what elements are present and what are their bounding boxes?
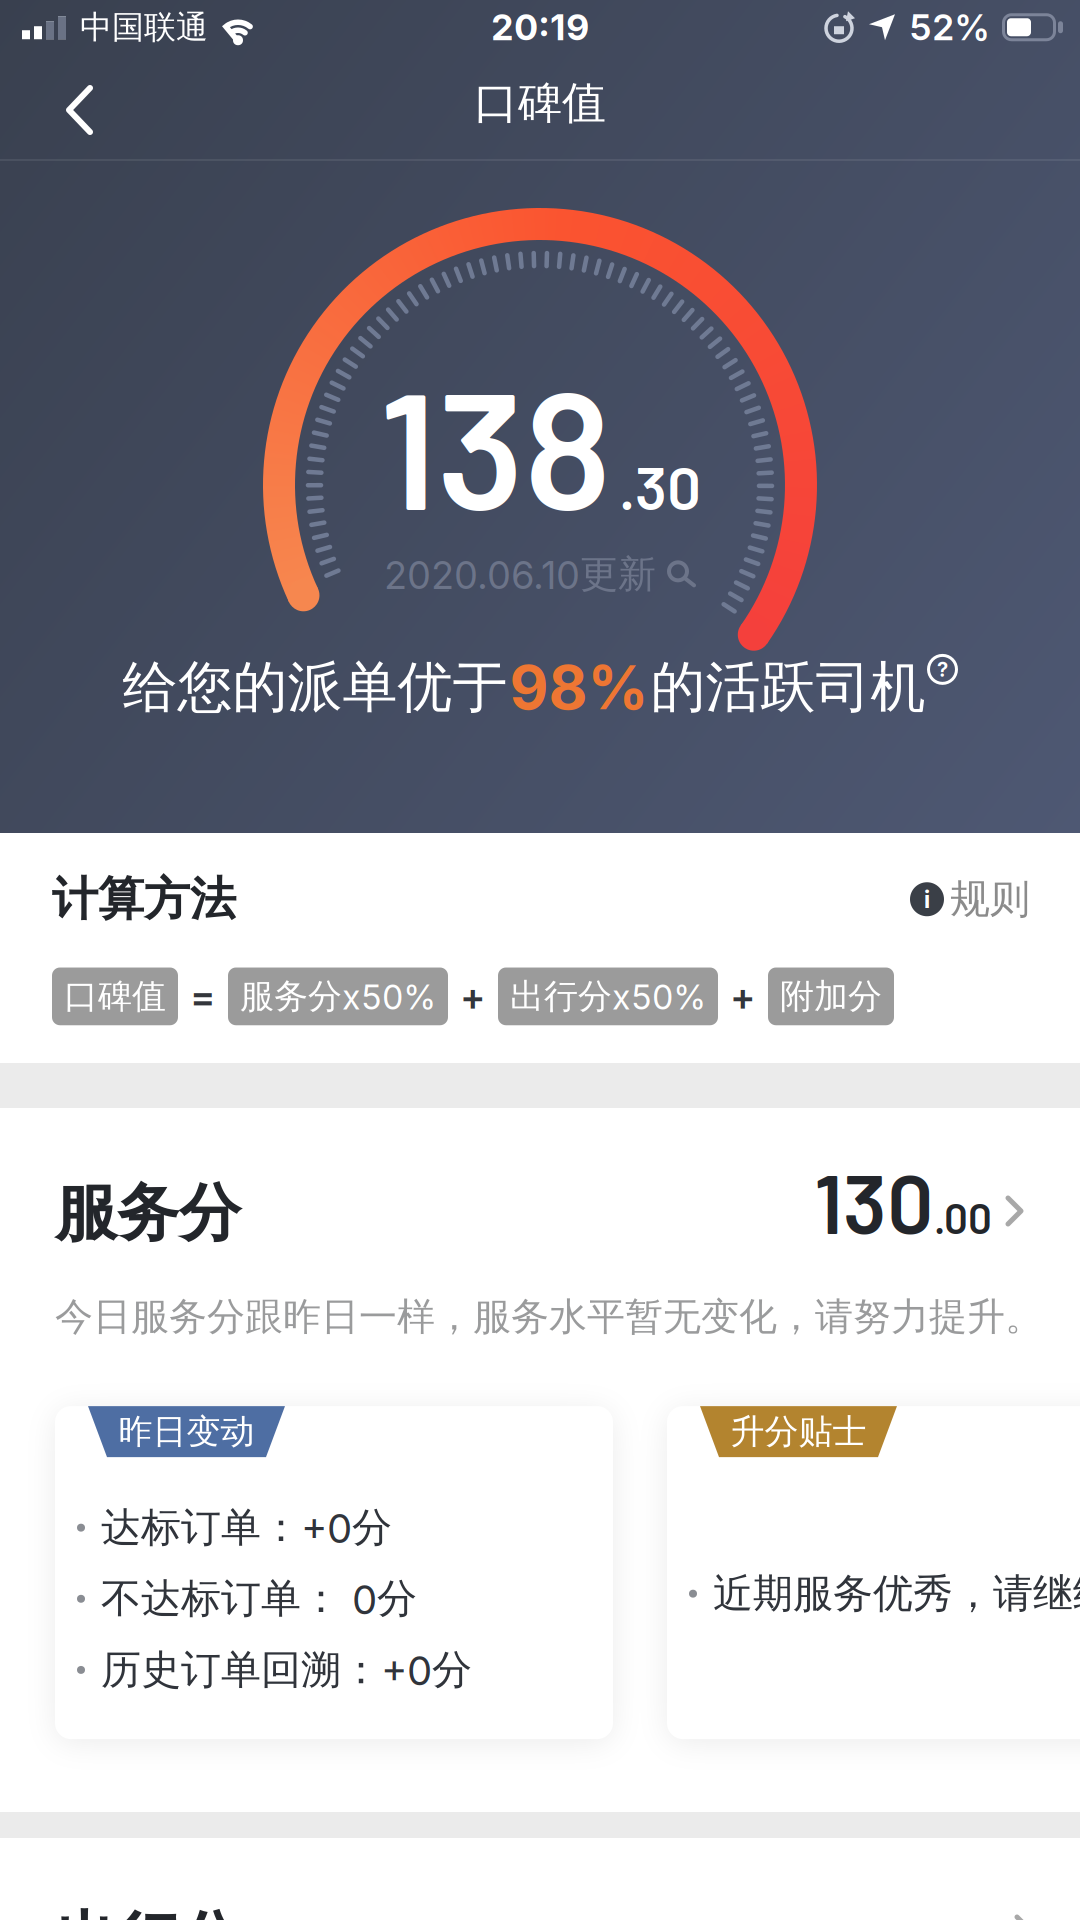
staticText: = xyxy=(190,974,216,1019)
staticText: 中国联通 xyxy=(80,8,208,47)
button[interactable]: 服务分 xyxy=(55,1152,1023,1251)
button[interactable]: 返回 xyxy=(0,0,96,135)
staticText: 今日服务分跟昨日一样，服务水平暂无变化，请努力提升。 xyxy=(55,1293,1043,1340)
staticText: 出行分x50% xyxy=(510,975,706,1017)
staticText: 口碑值 xyxy=(474,76,606,130)
staticText: 出行分 xyxy=(55,1903,241,1920)
staticText: 服务分x50% xyxy=(240,975,436,1017)
staticText: ? xyxy=(937,658,948,681)
staticText: 138 xyxy=(379,346,611,543)
staticText: 计算方法 xyxy=(52,871,236,927)
staticText: 昨日变动 xyxy=(118,1411,254,1452)
staticText: 2020.06.10更新 xyxy=(384,551,656,598)
staticText: 规则 xyxy=(950,875,1030,924)
staticText: 的活跃司机 xyxy=(650,654,925,721)
staticText: 服务分 xyxy=(55,1175,241,1251)
button[interactable]: 规则 xyxy=(910,875,1030,924)
staticText: 20:19 xyxy=(491,6,589,48)
staticText: 不达标订单： 0分 xyxy=(101,1574,417,1623)
staticText: + xyxy=(460,974,486,1019)
staticText: 130 xyxy=(814,1152,934,1250)
staticText: 98% xyxy=(509,652,648,723)
staticText: + xyxy=(730,974,756,1019)
staticText: 近期服务优秀，请继续努力 xyxy=(713,1569,1080,1618)
button[interactable]: 出行分 xyxy=(0,1838,1080,1920)
staticText: 52% xyxy=(909,6,990,48)
staticText: 达标订单：+0分 xyxy=(101,1503,392,1552)
staticText: 升分贴士 xyxy=(730,1411,866,1452)
staticText: 附加分 xyxy=(780,975,882,1017)
staticText: .30 xyxy=(619,450,701,522)
button[interactable]: 帮助 xyxy=(927,672,957,702)
staticText: 口碑值 xyxy=(64,975,166,1017)
staticText: 给您的派单优于 xyxy=(122,654,507,721)
staticText: .00 xyxy=(934,1192,992,1242)
staticText: 历史订单回溯：+0分 xyxy=(101,1645,472,1694)
staticText: i xyxy=(924,885,930,913)
